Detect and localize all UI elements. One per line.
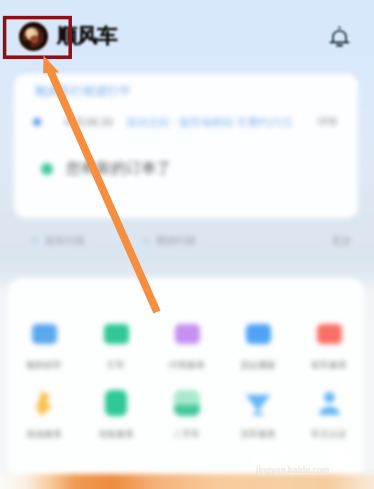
button[interactable]: 我的行程 (141, 234, 196, 247)
staticText: 货运搬家 (240, 359, 276, 370)
staticText: 今天08:30 (63, 114, 114, 129)
staticText: du (297, 446, 319, 469)
staticText: 发布行程 (45, 234, 85, 247)
button[interactable]: 充电服务 (80, 390, 151, 439)
staticText: 深圳北站 · 坂田地铁站 车费约25元 (126, 114, 294, 129)
staticText: Bai (253, 446, 280, 469)
staticText: 顺风快车 (26, 359, 62, 370)
button[interactable]: 打车 (80, 321, 151, 370)
button[interactable]: 货运搬家 (222, 321, 293, 370)
button[interactable]: 发布行程 (30, 234, 85, 247)
button[interactable]: 顺风车行程进行中 (14, 74, 358, 218)
staticText: 租车服务 (311, 359, 347, 370)
staticText: 顺风车 (57, 24, 117, 49)
button[interactable]: 洗车服务 (222, 390, 293, 439)
button[interactable]: 代驾服务 (151, 321, 222, 370)
staticText: 打车 (107, 359, 125, 370)
button[interactable]: 加油服务 (8, 390, 80, 439)
staticText: 二手车 (173, 428, 200, 439)
button[interactable]: 租车服务 (293, 321, 364, 370)
staticText: 加油服务 (26, 428, 62, 439)
staticText: 充电服务 (98, 428, 134, 439)
button[interactable]: 顺风快车 (8, 321, 80, 370)
staticText: 详情 (317, 115, 337, 128)
staticText: 洗车服务 (240, 428, 276, 439)
button[interactable]: Notifications (324, 21, 354, 51)
staticText: jingyan.baidu.com (256, 464, 330, 475)
staticText: 车主认证 (311, 428, 347, 439)
staticText: 更多 (332, 234, 352, 247)
staticText: 我的行程 (156, 234, 196, 247)
staticText: 顺风车行程进行中 (35, 83, 131, 98)
button[interactable]: 车主认证 (293, 390, 364, 439)
staticText: 您有新的订单了 (66, 159, 171, 178)
button[interactable]: 二手车 (151, 390, 222, 439)
staticText: 代驾服务 (169, 359, 205, 370)
button[interactable]: Profile (17, 20, 49, 52)
